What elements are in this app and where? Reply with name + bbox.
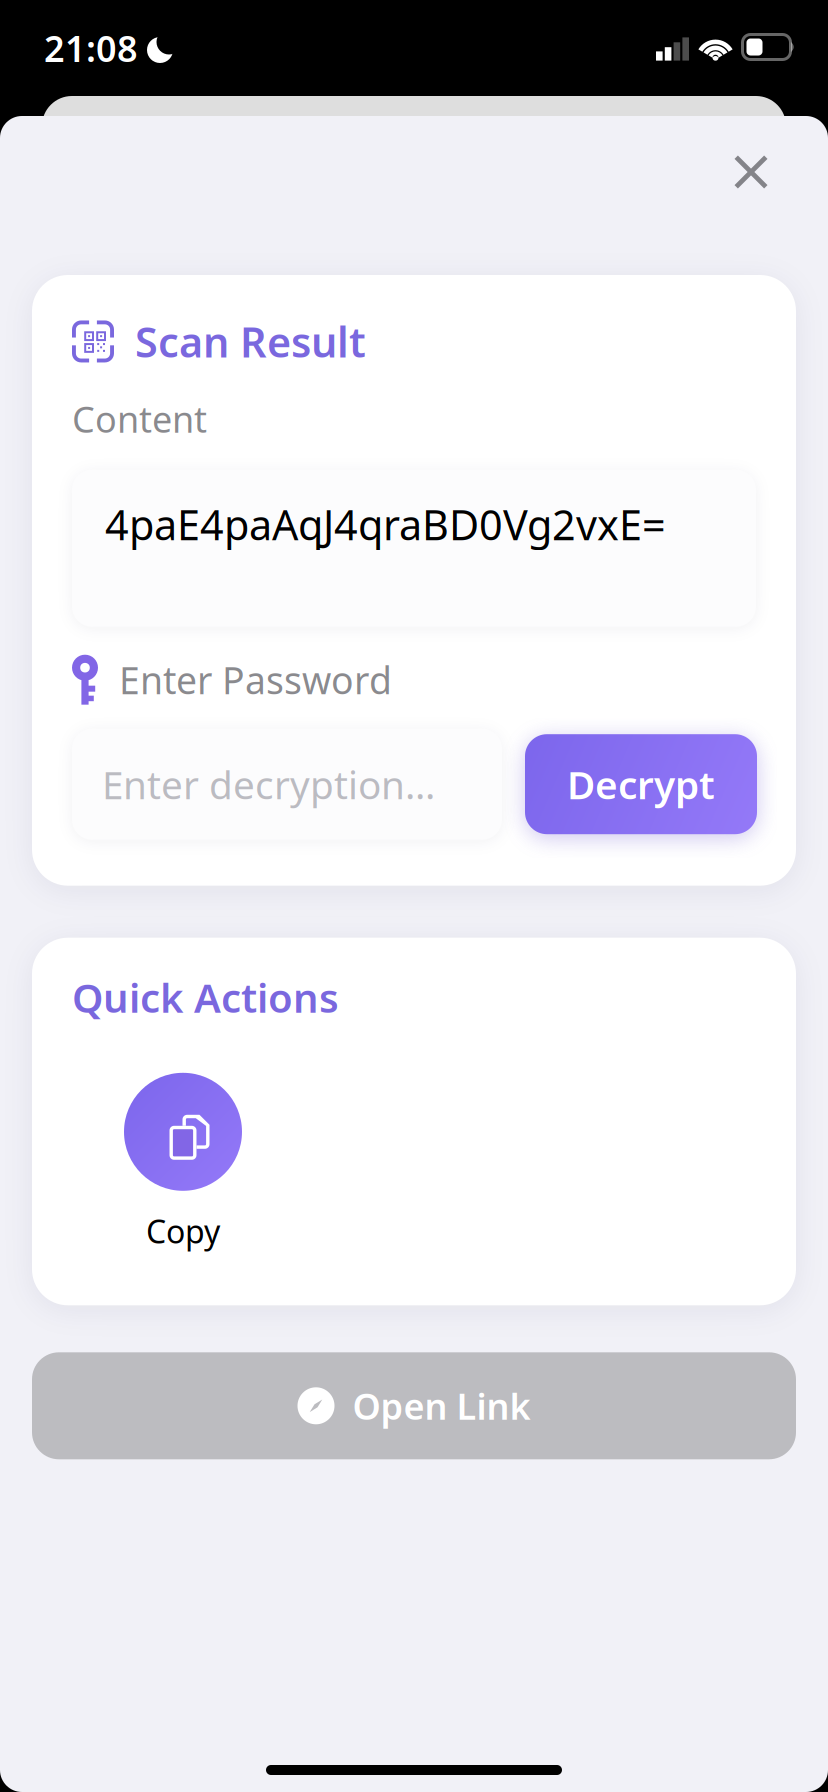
staticText: Enter Password bbox=[119, 655, 392, 704]
button[interactable]: Decrypt bbox=[525, 734, 757, 834]
staticText: 21:08 bbox=[44, 24, 138, 72]
staticText: Copy bbox=[146, 1210, 220, 1252]
staticText: Content bbox=[72, 395, 207, 443]
button[interactable]: Copy bbox=[103, 1073, 263, 1252]
button[interactable]: Close bbox=[713, 134, 789, 210]
button[interactable]: Open Link bbox=[32, 1352, 796, 1459]
staticText: Scan Result bbox=[135, 314, 366, 369]
staticText: Decrypt bbox=[567, 758, 715, 810]
staticText: Open Link bbox=[352, 1382, 530, 1430]
staticText: Quick Actions bbox=[72, 971, 339, 1024]
staticText: Enter decryption... bbox=[102, 758, 435, 810]
staticText: 4paE4paAqJ4qraBD0Vg2vxE= bbox=[105, 497, 666, 552]
